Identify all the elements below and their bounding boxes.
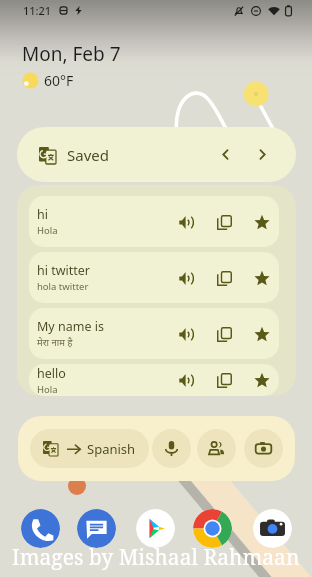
button[interactable]: hi twitter — [29, 252, 279, 303]
button[interactable]: hello — [29, 364, 279, 396]
button[interactable]: Copy — [211, 265, 237, 291]
button[interactable]: Microphone — [152, 429, 191, 468]
button[interactable]: Saved — [17, 127, 296, 182]
button[interactable]: Copy — [211, 367, 237, 393]
button[interactable]: Star — [249, 321, 275, 347]
staticText: My name is — [37, 318, 104, 335]
staticText: Saved — [67, 145, 109, 165]
staticText: hola twitter — [37, 280, 89, 293]
button[interactable]: hi — [29, 196, 279, 247]
button[interactable]: Camera — [253, 509, 292, 548]
staticText: 11:21 — [23, 3, 52, 18]
button[interactable]: Listen — [173, 209, 199, 235]
button[interactable]: Phone — [21, 509, 60, 548]
staticText: मेरा नाम है — [37, 336, 73, 349]
staticText: 60°F — [44, 71, 74, 90]
button[interactable]: My name is — [29, 308, 279, 359]
button[interactable]: Listen — [173, 321, 199, 347]
button[interactable]: Copy — [211, 209, 237, 235]
button[interactable]: Previous — [212, 141, 239, 168]
button[interactable]: Listen — [173, 265, 199, 291]
button[interactable]: Messages — [77, 509, 116, 548]
staticText: hello — [37, 365, 66, 382]
button[interactable]: Listen — [173, 367, 199, 393]
staticText: Spanish — [87, 440, 136, 458]
button[interactable]: Next — [249, 141, 276, 168]
staticText: hi twitter — [37, 262, 91, 279]
button[interactable]: Camera — [244, 429, 283, 468]
button[interactable]: Star — [249, 367, 275, 393]
button[interactable]: Play Store — [136, 509, 175, 548]
button[interactable]: Copy — [211, 321, 237, 347]
staticText: Mon, Feb 7 — [22, 41, 121, 67]
button[interactable]: Chrome — [193, 509, 232, 548]
button[interactable]: Spanish — [30, 429, 149, 468]
staticText: hi — [37, 206, 48, 223]
staticText: Hola — [37, 224, 58, 237]
button[interactable]: Conversation — [197, 429, 236, 468]
button[interactable]: Star — [249, 209, 275, 235]
staticText: Hola — [37, 383, 58, 396]
button[interactable]: Star — [249, 265, 275, 291]
staticText: Images by Mishaal Rahmaan — [12, 543, 300, 572]
